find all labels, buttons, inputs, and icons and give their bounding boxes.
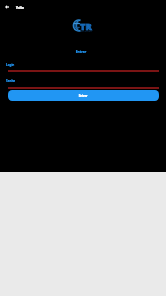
button[interactable]: Login	[6, 63, 36, 67]
staticText: Entrar	[0, 49, 164, 54]
staticText: TR	[80, 20, 92, 33]
button[interactable]: Senha	[6, 79, 36, 83]
staticText: Senha	[6, 79, 36, 83]
staticText: TR	[80, 20, 92, 33]
staticText: Volta	[16, 6, 46, 10]
staticText: Login	[6, 63, 36, 67]
staticText: Entrar	[73, 94, 93, 98]
button[interactable]: Entrar	[8, 90, 159, 101]
staticText: Login	[6, 63, 36, 67]
staticText: Senha	[6, 79, 36, 83]
staticText: Entrar	[0, 49, 164, 54]
staticText: Entrar	[73, 94, 93, 98]
button[interactable]: Back	[1, 0, 13, 14]
staticText: TECNOLOGIA	[80, 30, 92, 33]
button[interactable]: Volta	[16, 6, 46, 10]
staticText: Volta	[16, 6, 46, 10]
